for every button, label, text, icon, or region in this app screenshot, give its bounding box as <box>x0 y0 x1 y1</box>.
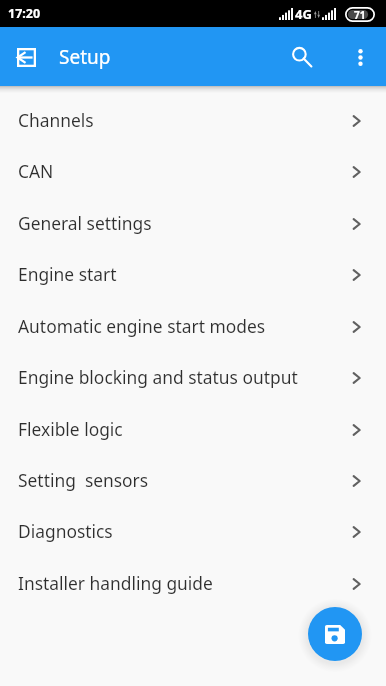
staticText: 71 <box>354 8 366 22</box>
button[interactable]: Setting sensors <box>0 454 386 506</box>
button[interactable]: General settings <box>0 197 386 249</box>
staticText: 4G <box>295 5 312 23</box>
staticText: Setup <box>59 44 111 70</box>
staticText: Installer handling guide <box>18 571 213 595</box>
staticText: Automatic engine start modes <box>18 314 266 338</box>
staticText: Flexible logic <box>18 417 123 441</box>
staticText: CAN <box>18 159 54 183</box>
staticText: 17:20 <box>8 5 41 22</box>
button[interactable]: Diagnostics <box>0 505 386 557</box>
staticText: Setting sensors <box>18 468 149 492</box>
button[interactable]: Channels <box>0 94 386 146</box>
button[interactable]: Flexible logic <box>0 403 386 455</box>
button[interactable]: Save <box>308 607 362 661</box>
button[interactable]: Engine blocking and status output <box>0 351 386 403</box>
button[interactable]: More options <box>336 33 384 81</box>
button[interactable]: Engine start <box>0 248 386 300</box>
button[interactable]: Automatic engine start modes <box>0 300 386 352</box>
staticText: General settings <box>18 211 152 235</box>
staticText: Engine blocking and status output <box>18 365 298 389</box>
button[interactable]: Installer handling guide <box>0 557 386 609</box>
button[interactable]: CAN <box>0 145 386 197</box>
button[interactable]: Back <box>2 33 50 81</box>
staticText: Diagnostics <box>18 519 113 543</box>
staticText: Engine start <box>18 262 117 286</box>
button[interactable]: Search <box>278 33 326 81</box>
staticText: Channels <box>18 108 94 132</box>
